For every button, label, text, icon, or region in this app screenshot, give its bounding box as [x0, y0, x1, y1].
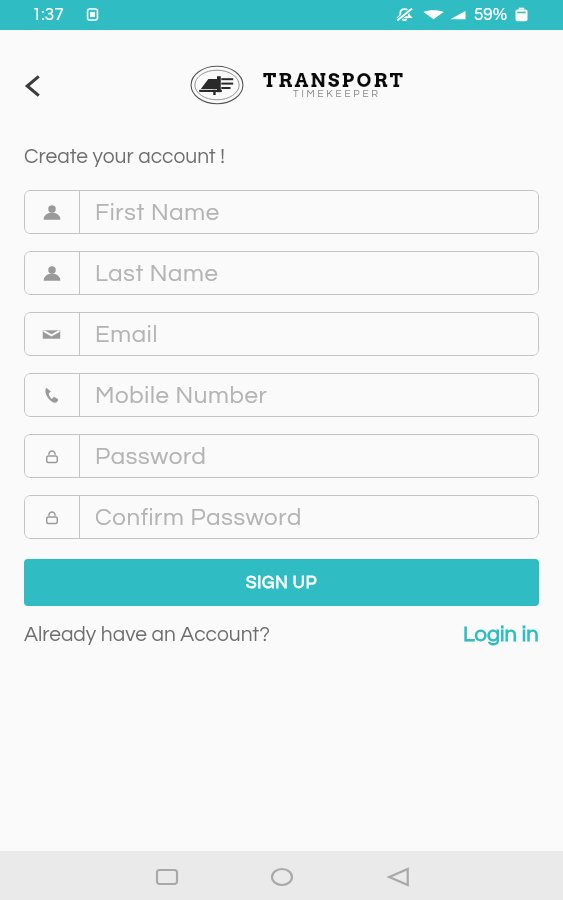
button[interactable]: Mobile Number: [24, 373, 539, 417]
button[interactable]: Back: [12, 65, 54, 107]
staticText: Email: [95, 322, 159, 347]
staticText: Password: [95, 444, 207, 469]
staticText: 1:37: [32, 6, 64, 24]
button[interactable]: Password: [24, 434, 539, 478]
staticText: Confirm Password: [95, 505, 302, 530]
staticText: Last Name: [95, 261, 219, 286]
staticText: First Name: [95, 200, 220, 225]
staticText: SIGN UP: [246, 574, 318, 592]
button[interactable]: Home: [258, 851, 305, 900]
staticText: 59%: [474, 6, 508, 24]
staticText: Create your account !: [24, 146, 225, 168]
button[interactable]: Last Name: [24, 251, 539, 295]
staticText: Login in: [463, 623, 539, 646]
button[interactable]: Confirm Password: [24, 495, 539, 539]
button[interactable]: Login in: [463, 623, 539, 646]
staticText: Mobile Number: [95, 383, 268, 408]
button[interactable]: Email: [24, 312, 539, 356]
staticText: TRANSPORT: [263, 69, 406, 92]
button[interactable]: Back: [375, 851, 422, 900]
staticText: TIMEKEEPER: [293, 89, 381, 99]
button[interactable]: Recent apps: [143, 851, 190, 900]
button[interactable]: First Name: [24, 190, 539, 234]
button[interactable]: SIGN UP: [24, 559, 539, 606]
staticText: Already have an Account?: [24, 624, 270, 646]
